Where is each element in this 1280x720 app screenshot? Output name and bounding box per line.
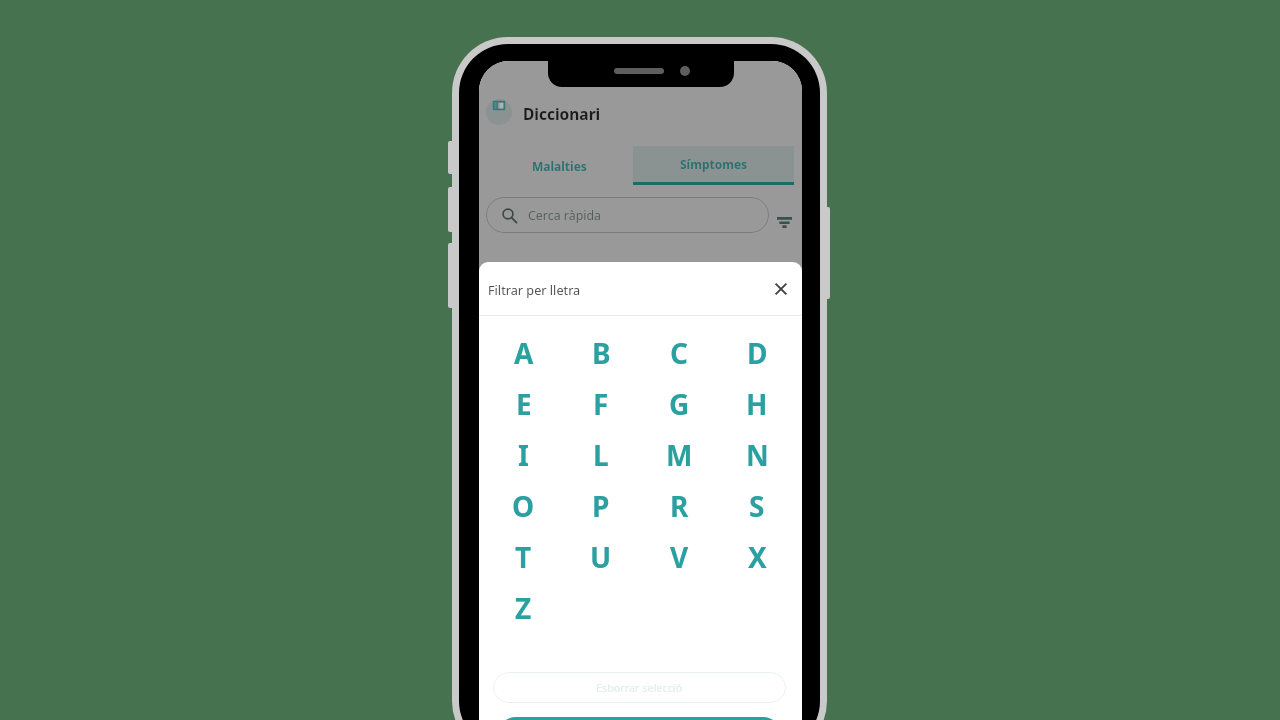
staticText: H — [746, 385, 768, 423]
button[interactable]: Esborrar selecció — [493, 672, 786, 703]
staticText: O — [512, 487, 535, 525]
staticText: C — [670, 334, 688, 372]
staticText: V — [670, 538, 689, 576]
button[interactable]: A — [485, 327, 562, 378]
staticText: N — [746, 436, 769, 474]
button[interactable]: P — [562, 480, 640, 531]
button[interactable]: G — [640, 378, 718, 429]
button[interactable]: X — [718, 531, 796, 582]
button[interactable]: I — [485, 429, 562, 480]
button[interactable]: Dictionary — [486, 99, 512, 125]
staticText: Z — [515, 589, 532, 627]
button[interactable]: L — [562, 429, 640, 480]
staticText: Esborrar selecció — [596, 680, 683, 695]
staticText: U — [590, 538, 612, 576]
staticText: T — [515, 538, 532, 576]
staticText: E — [516, 385, 532, 423]
staticText: A — [514, 334, 534, 372]
staticText: D — [747, 334, 768, 372]
staticText: Diccionari — [523, 103, 601, 124]
button[interactable]: H — [718, 378, 796, 429]
staticText: S — [749, 487, 765, 525]
button[interactable]: Símptomes — [633, 146, 794, 185]
staticText: B — [592, 334, 611, 372]
button[interactable]: Filter — [767, 205, 801, 239]
button[interactable]: B — [562, 327, 640, 378]
staticText: L — [593, 436, 609, 474]
button[interactable]: O — [485, 480, 562, 531]
button[interactable]: Close — [761, 269, 800, 308]
button[interactable]: Cerca ràpida — [502, 197, 769, 233]
staticText: M — [666, 436, 693, 474]
button[interactable]: Aplicar — [497, 717, 782, 720]
staticText: X — [748, 538, 767, 576]
button[interactable]: R — [640, 480, 718, 531]
button[interactable]: M — [640, 429, 718, 480]
staticText: Filtrar per lletra — [488, 281, 581, 298]
button[interactable]: D — [718, 327, 796, 378]
button[interactable]: Malalties — [479, 146, 633, 185]
staticText: P — [592, 487, 610, 525]
button[interactable]: U — [562, 531, 640, 582]
button[interactable]: F — [562, 378, 640, 429]
button[interactable]: N — [718, 429, 796, 480]
staticText: Cerca ràpida — [528, 207, 602, 224]
staticText: I — [518, 436, 529, 474]
button[interactable]: E — [485, 378, 562, 429]
staticText: Símptomes — [680, 156, 748, 172]
staticText: F — [593, 385, 609, 423]
staticText: G — [669, 385, 690, 423]
button[interactable]: V — [640, 531, 718, 582]
staticText: Malalties — [532, 158, 587, 174]
button[interactable]: S — [718, 480, 796, 531]
button[interactable]: C — [640, 327, 718, 378]
button[interactable]: Z — [485, 582, 562, 633]
staticText: R — [670, 487, 689, 525]
button[interactable]: T — [485, 531, 562, 582]
